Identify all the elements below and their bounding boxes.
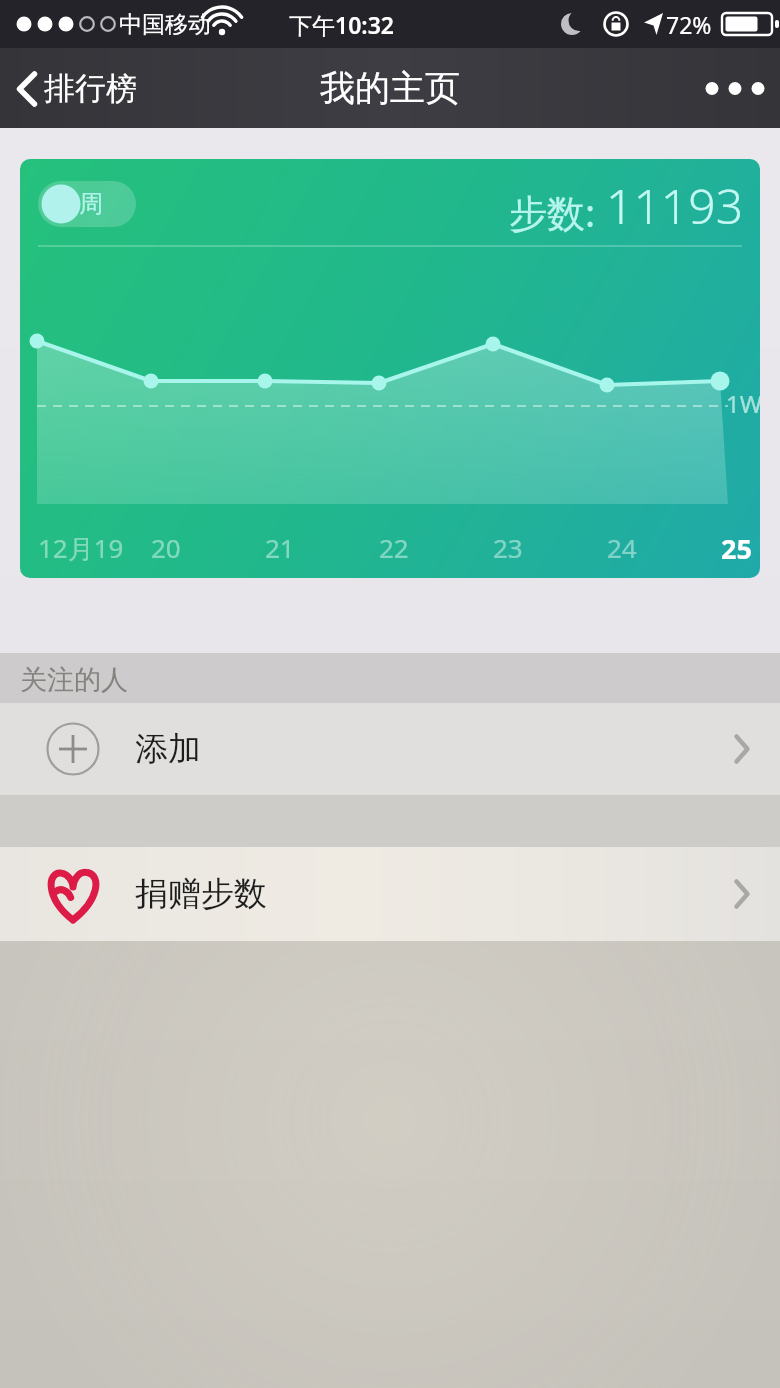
button[interactable]: 周 [20, 159, 760, 578]
staticText: 25 [721, 530, 752, 567]
button[interactable]: 排行榜 [0, 57, 155, 120]
staticText: 20 [151, 530, 181, 565]
button[interactable]: More options [684, 58, 780, 119]
staticText: 21 [265, 530, 295, 565]
staticText: 11193 [606, 173, 744, 238]
staticText: 72% [666, 9, 712, 40]
staticText: 24 [607, 530, 637, 565]
staticText: 我的主页 [320, 66, 460, 110]
button[interactable]: 捐赠步数 [0, 847, 780, 941]
staticText: 12月19 [38, 530, 124, 566]
staticText: 关注的人 [20, 663, 128, 697]
button[interactable]: 添加 [0, 703, 780, 795]
staticText: 排行榜 [44, 69, 137, 108]
staticText: 下午10:32 [289, 9, 394, 40]
staticText: 1W [726, 387, 760, 420]
staticText: 23 [493, 530, 523, 565]
staticText: 步数: [509, 186, 606, 238]
staticText: 中国移动 [119, 10, 211, 39]
staticText: 22 [379, 530, 409, 565]
button[interactable]: 周 [38, 181, 136, 227]
staticText: 捐赠步数 [135, 873, 267, 915]
staticText: 添加 [135, 728, 201, 770]
staticText: 周 [79, 189, 103, 219]
